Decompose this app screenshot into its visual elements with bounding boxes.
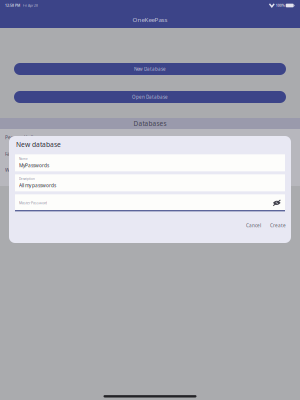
staticText: Personal.kdbx bbox=[5, 134, 38, 141]
staticText: New database bbox=[16, 140, 61, 149]
button[interactable]: Open Database bbox=[14, 91, 286, 103]
button[interactable]: Show password bbox=[273, 199, 281, 206]
staticText: Description bbox=[19, 177, 35, 181]
staticText: Family.kdbx bbox=[5, 151, 31, 157]
staticText: All my passwords bbox=[19, 182, 56, 189]
button[interactable]: New Database bbox=[14, 63, 286, 75]
staticText: Name bbox=[19, 157, 28, 161]
staticText: 12:58 PM bbox=[5, 3, 20, 8]
staticText: Cancel bbox=[246, 222, 261, 229]
staticText: Databases bbox=[133, 119, 166, 128]
staticText: MyPasswords bbox=[19, 162, 49, 169]
staticText: Work.kdbx bbox=[5, 167, 30, 173]
staticText: New Database bbox=[134, 66, 166, 72]
staticText: Master Password bbox=[19, 200, 47, 205]
staticText: Open Database bbox=[132, 94, 168, 100]
button[interactable]: Create bbox=[267, 220, 289, 231]
staticText: OneKeePass bbox=[132, 15, 167, 23]
button[interactable]: Cancel bbox=[243, 220, 264, 231]
button[interactable]: Family.kdbx bbox=[0, 146, 300, 162]
staticText: 100% bbox=[275, 3, 286, 8]
button[interactable]: Personal.kdbx bbox=[0, 129, 300, 146]
staticText: Create bbox=[270, 222, 286, 229]
staticText: Fri Apr 28 bbox=[20, 3, 38, 8]
button[interactable]: Work.kdbx bbox=[0, 162, 300, 178]
